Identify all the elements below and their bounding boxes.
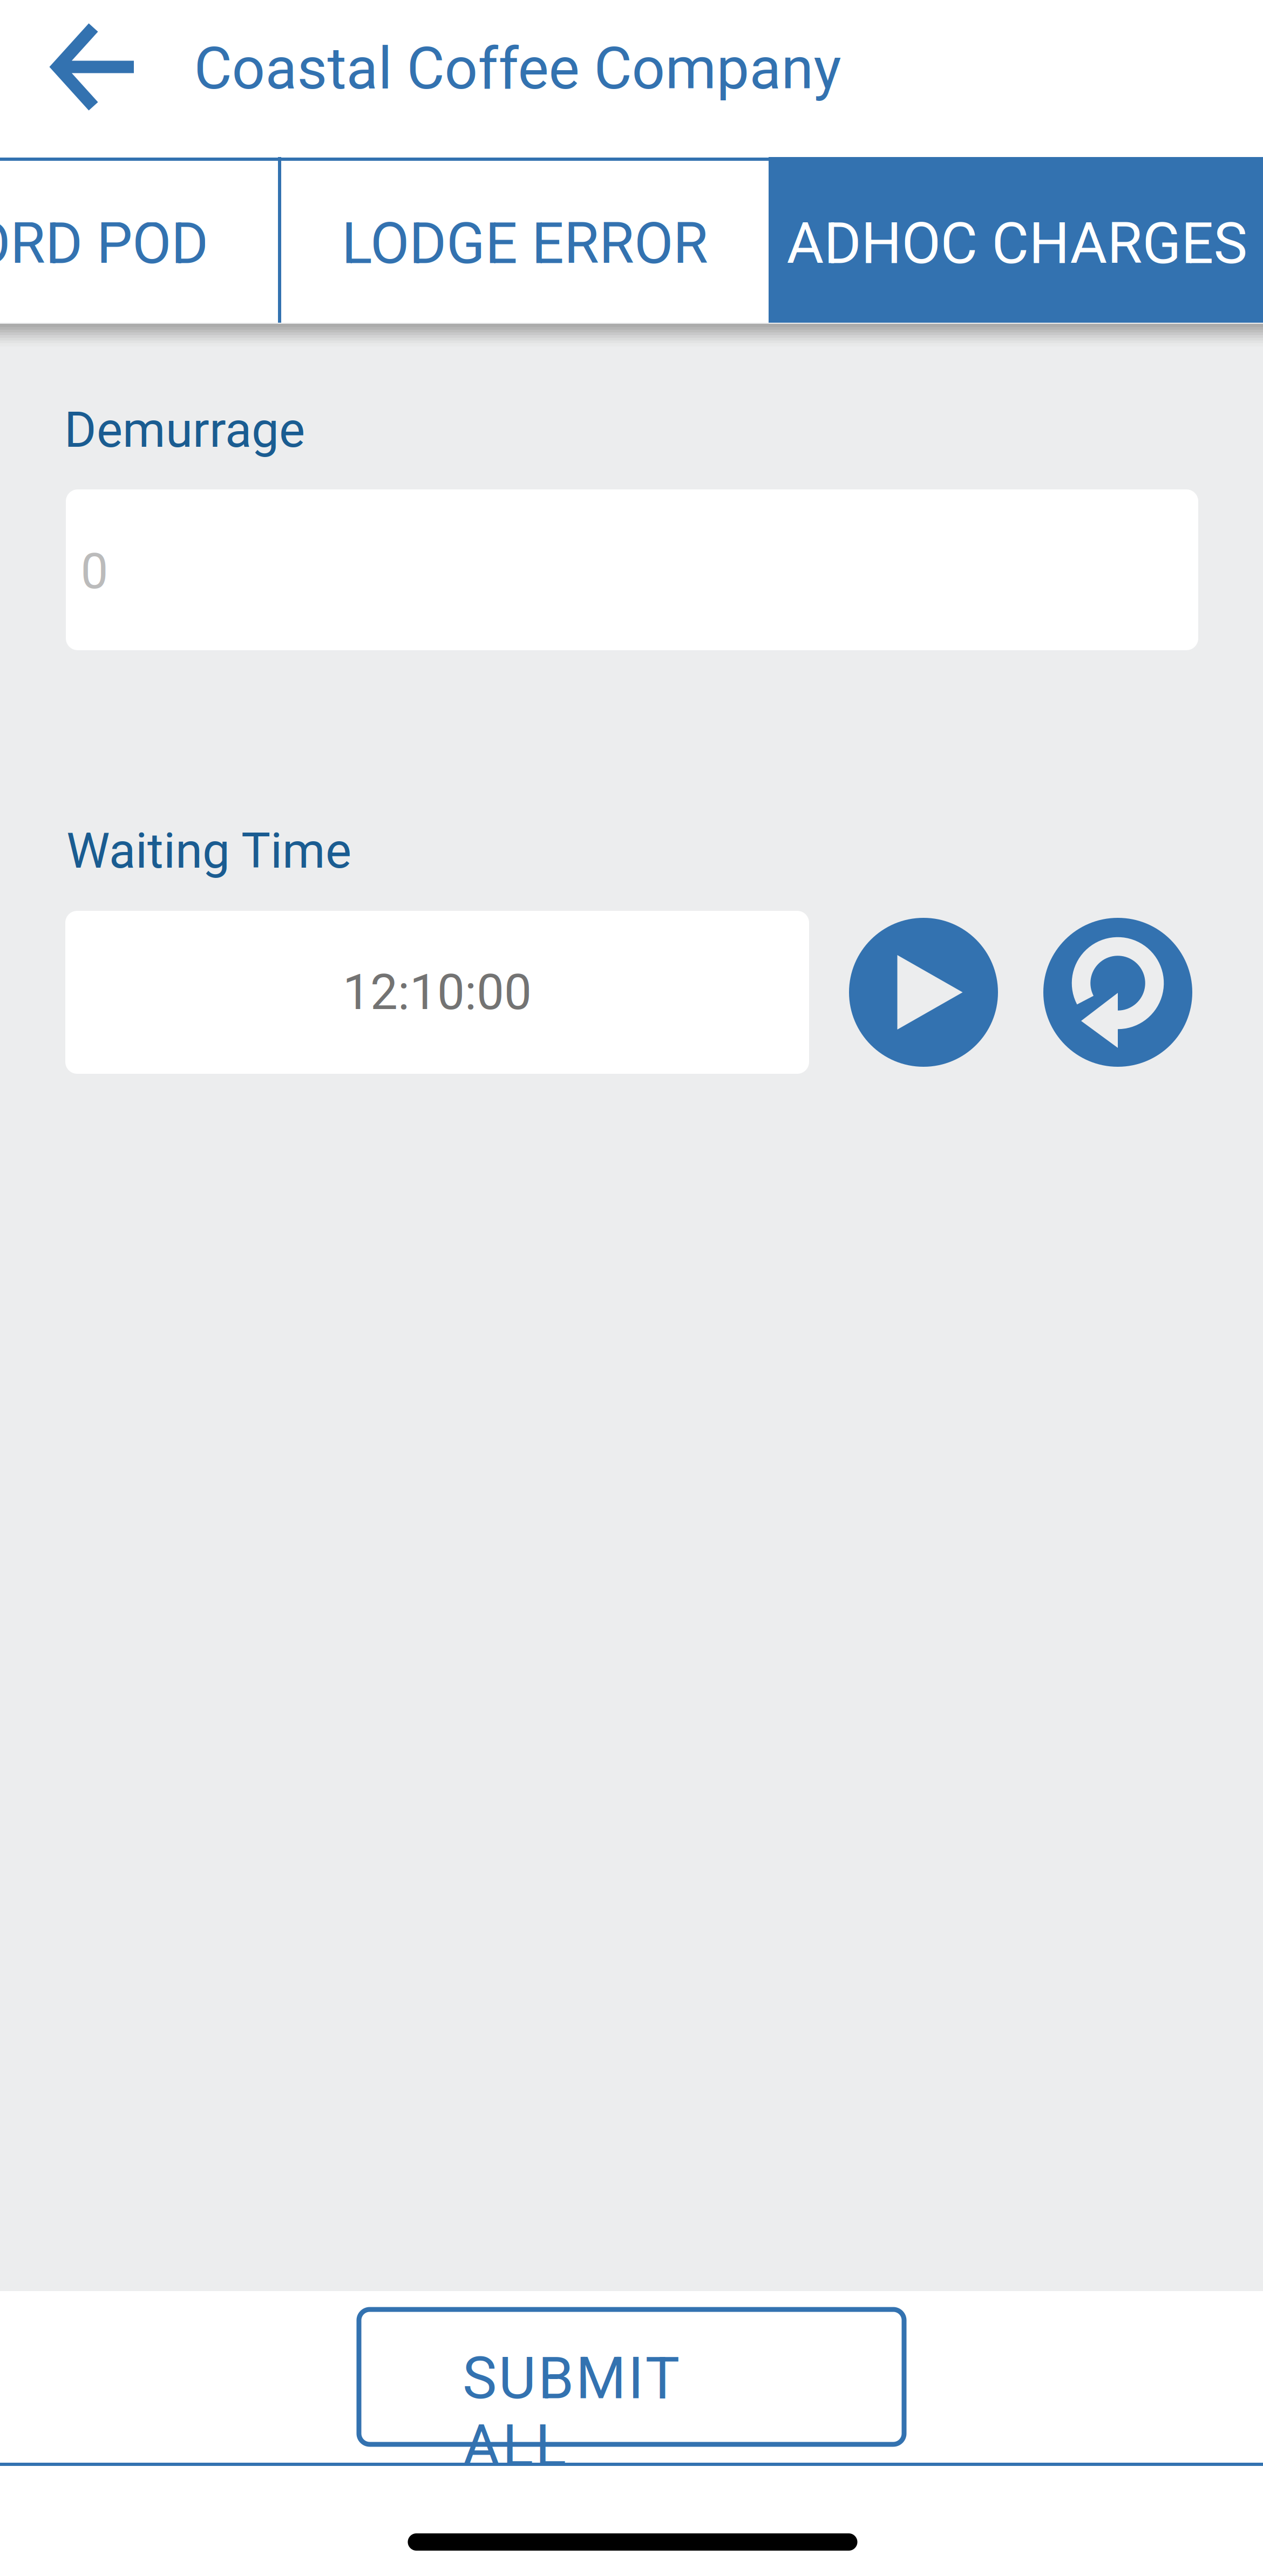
staticText: 12:10:00 <box>343 964 532 1021</box>
button[interactable]: LODGE ERROR <box>281 157 769 323</box>
button[interactable]: Reset timer <box>1043 918 1192 1067</box>
staticText: Demurrage <box>64 401 305 459</box>
staticText: SUBMIT ALL <box>463 2345 800 2412</box>
staticText: ADHOC CHARGES <box>787 210 1248 277</box>
button[interactable]: Demurrage amount <box>66 489 1198 650</box>
button[interactable]: ADHOC CHARGES <box>769 157 1263 323</box>
button[interactable]: Waiting time 12:10:00 <box>65 911 809 1074</box>
staticText: RECORD POD <box>0 210 208 277</box>
button[interactable]: RECORD POD <box>0 157 278 323</box>
staticText: 0 <box>81 543 108 600</box>
staticText: Coastal Coffee Company <box>194 34 841 103</box>
button[interactable]: Start timer <box>849 918 998 1067</box>
staticText: LODGE ERROR <box>342 210 708 277</box>
staticText: Waiting Time <box>66 822 351 880</box>
button[interactable]: SUBMIT ALL <box>359 2309 904 2444</box>
button[interactable]: Back <box>10 0 172 135</box>
